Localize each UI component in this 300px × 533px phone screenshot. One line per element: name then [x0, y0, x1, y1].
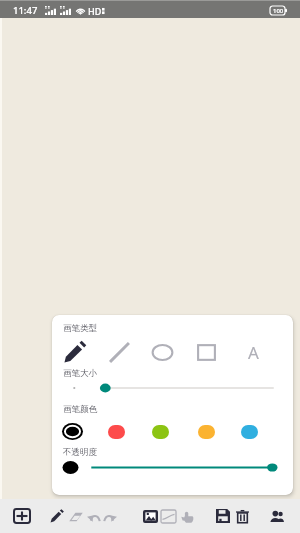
button[interactable]: Orange: [196, 421, 217, 442]
staticText: 画笔类型: [63, 323, 97, 334]
button[interactable]: Red: [106, 421, 127, 442]
staticText: 画笔颜色: [63, 404, 97, 415]
button[interactable]: Undo: [80, 499, 106, 533]
button[interactable]: Redo: [97, 499, 123, 533]
button[interactable]: Blue: [239, 421, 260, 442]
staticText: HD: [88, 5, 102, 17]
button[interactable]: Save: [210, 499, 236, 533]
button[interactable]: Opacity slider: [52, 459, 293, 476]
button[interactable]: Image: [137, 499, 163, 533]
button[interactable]: Black colour: [62, 421, 83, 442]
staticText: 11:47: [13, 4, 38, 17]
button[interactable]: Brush size slider: [52, 380, 293, 396]
button[interactable]: Circle: [150, 340, 174, 364]
button[interactable]: Add frame: [9, 499, 35, 533]
staticText: A: [248, 341, 259, 364]
button[interactable]: Square: [194, 340, 218, 364]
button[interactable]: Green: [150, 421, 171, 442]
button[interactable]: Eraser: [63, 499, 89, 533]
button[interactable]: Line: [107, 340, 131, 364]
button[interactable]: Text: [241, 340, 265, 364]
staticText: 100: [273, 7, 284, 15]
staticText: 画笔大小: [63, 368, 97, 379]
staticText: 不透明度: [63, 447, 97, 458]
button[interactable]: Pan: [174, 499, 200, 533]
button[interactable]: Delete: [229, 499, 255, 533]
button[interactable]: Pen: [44, 499, 70, 533]
button[interactable]: Chart: [155, 499, 181, 533]
button[interactable]: Pencil: [62, 340, 86, 364]
button[interactable]: Collaborators: [264, 499, 290, 533]
